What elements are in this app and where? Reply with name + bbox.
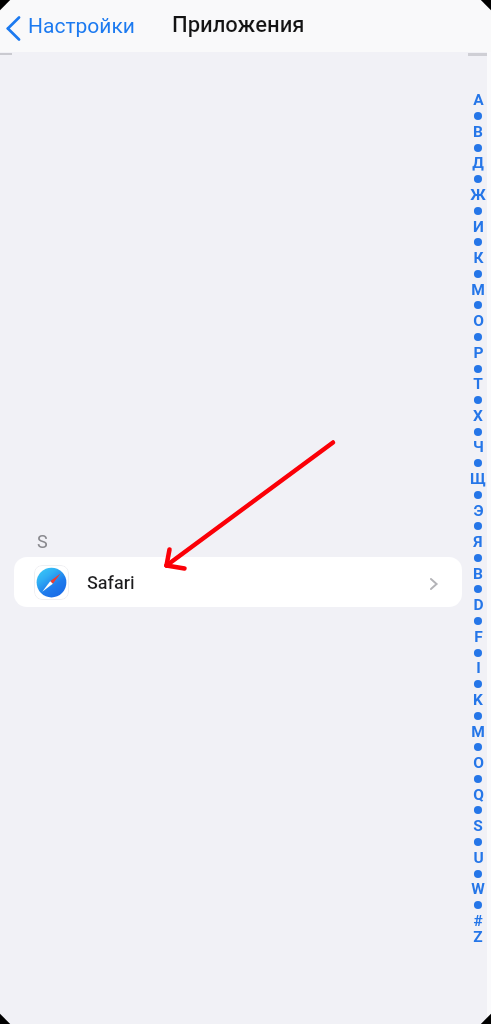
button[interactable]: Index dot: [465, 139, 491, 157]
staticText: А: [473, 91, 484, 109]
button[interactable]: Index dot: [465, 423, 491, 441]
button[interactable]: Х: [465, 407, 491, 425]
staticText: Щ: [470, 470, 486, 488]
button[interactable]: И: [465, 218, 491, 236]
staticText: Т: [473, 375, 483, 393]
staticText: B: [473, 565, 483, 583]
button[interactable]: Index dot: [465, 612, 491, 630]
staticText: Х: [473, 407, 483, 425]
button[interactable]: Q: [465, 786, 491, 804]
button[interactable]: W: [465, 880, 491, 898]
button[interactable]: Index dot: [465, 770, 491, 788]
button[interactable]: Я: [465, 533, 491, 551]
button[interactable]: Index dot: [465, 202, 491, 220]
button[interactable]: Настройки: [5, 0, 135, 52]
button[interactable]: Index dot: [465, 865, 491, 883]
button[interactable]: Index dot: [465, 391, 491, 409]
button[interactable]: Щ: [465, 470, 491, 488]
button[interactable]: Э: [465, 502, 491, 520]
button[interactable]: Index dot: [465, 360, 491, 378]
staticText: Ж: [470, 186, 486, 204]
button[interactable]: Safari: [14, 557, 462, 607]
staticText: K: [473, 691, 483, 709]
staticText: Z: [473, 928, 483, 946]
staticText: S: [37, 531, 48, 552]
button[interactable]: Index dot: [465, 517, 491, 535]
button[interactable]: K: [465, 691, 491, 709]
button[interactable]: O: [465, 754, 491, 772]
other: Alphabet index: [465, 0, 491, 1024]
button[interactable]: Д: [465, 154, 491, 172]
button[interactable]: Т: [465, 375, 491, 393]
button[interactable]: Index dot: [465, 580, 491, 598]
button[interactable]: B: [465, 565, 491, 583]
button[interactable]: I: [465, 659, 491, 677]
staticText: И: [473, 218, 484, 236]
button[interactable]: Index dot: [465, 833, 491, 851]
button[interactable]: Index dot: [465, 644, 491, 662]
button[interactable]: Index dot: [465, 549, 491, 567]
staticText: F: [474, 628, 483, 646]
button[interactable]: Index dot: [465, 896, 491, 914]
staticText: Я: [473, 533, 483, 551]
button[interactable]: Index dot: [465, 296, 491, 314]
button[interactable]: S: [465, 817, 491, 835]
staticText: #: [473, 912, 483, 930]
button[interactable]: Z: [465, 928, 491, 946]
button[interactable]: Ч: [465, 438, 491, 456]
button[interactable]: Index dot: [465, 454, 491, 472]
button[interactable]: Index dot: [465, 707, 491, 725]
button[interactable]: Index dot: [465, 738, 491, 756]
staticText: Приложения: [172, 12, 305, 38]
button[interactable]: О: [465, 312, 491, 330]
button[interactable]: M: [465, 723, 491, 741]
button[interactable]: М: [465, 281, 491, 299]
staticText: Р: [473, 344, 484, 362]
button[interactable]: Index dot: [465, 107, 491, 125]
staticText: Настройки: [28, 14, 135, 39]
staticText: В: [473, 123, 483, 141]
button[interactable]: Index dot: [465, 675, 491, 693]
staticText: I: [476, 659, 481, 677]
staticText: O: [473, 754, 484, 772]
staticText: М: [471, 281, 485, 299]
button[interactable]: F: [465, 628, 491, 646]
staticText: К: [473, 249, 484, 267]
button[interactable]: D: [465, 596, 491, 614]
button[interactable]: А: [465, 91, 491, 109]
staticText: M: [471, 723, 485, 741]
staticText: S: [473, 817, 483, 835]
button[interactable]: U: [465, 849, 491, 867]
button[interactable]: Index dot: [465, 170, 491, 188]
staticText: W: [471, 880, 485, 898]
button[interactable]: #: [465, 912, 491, 930]
staticText: О: [473, 312, 484, 330]
staticText: Safari: [87, 572, 135, 593]
staticText: Ч: [473, 438, 484, 456]
button[interactable]: Index dot: [465, 328, 491, 346]
button[interactable]: В: [465, 123, 491, 141]
staticText: D: [473, 596, 484, 614]
staticText: U: [473, 849, 484, 867]
button[interactable]: Ж: [465, 186, 491, 204]
other: Open: [430, 578, 438, 590]
staticText: Q: [473, 786, 484, 804]
staticText: Э: [473, 502, 484, 520]
button[interactable]: Index dot: [465, 233, 491, 251]
button[interactable]: Р: [465, 344, 491, 362]
button[interactable]: Index dot: [465, 265, 491, 283]
button[interactable]: К: [465, 249, 491, 267]
button[interactable]: Index dot: [465, 801, 491, 819]
button[interactable]: Index dot: [465, 486, 491, 504]
staticText: Д: [472, 154, 484, 172]
